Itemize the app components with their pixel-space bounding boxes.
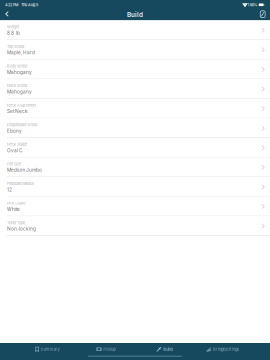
staticText: Mahogany [7, 69, 32, 75]
staticText: Build [127, 11, 143, 19]
staticText: Build [163, 347, 172, 352]
button[interactable]: Neck Attachment [0, 99, 270, 118]
staticText: Neck Attachment [7, 103, 36, 108]
button[interactable]: Neck Shape [0, 138, 270, 157]
staticText: Bridge/Strings [213, 347, 239, 352]
staticText: Pick Guard [7, 201, 25, 205]
staticText: Tuner Type [7, 220, 25, 225]
button[interactable]: Fingerboard Wood [0, 118, 270, 137]
button[interactable]: Fretboard Radius [0, 177, 270, 196]
staticText: Oval C [7, 148, 22, 153]
staticText: Maple, Hard [7, 50, 35, 55]
staticText: Fret Size [7, 162, 21, 166]
staticText: Fretboard Radius [7, 181, 34, 186]
staticText: Body Wood [7, 64, 27, 68]
staticText: 12 [7, 187, 12, 192]
button[interactable]: Compose [255, 10, 268, 19]
button[interactable]: Bridge/Strings [193, 344, 252, 355]
staticText: Top Wood [7, 44, 24, 49]
staticText: Set Neck [7, 108, 28, 114]
button[interactable]: Pickup [77, 344, 135, 355]
button[interactable]: Fret Size [0, 158, 270, 177]
staticText: White [7, 206, 20, 212]
button[interactable]: Body Wood [0, 60, 270, 79]
staticText: Thu Aug 5 [18, 2, 38, 7]
button[interactable]: Neck Wood [0, 79, 270, 98]
staticText: 8.8 lb [7, 30, 20, 36]
staticText: Ebony [7, 128, 22, 134]
staticText: 100% [247, 2, 259, 7]
staticText: Summary [41, 347, 60, 352]
staticText: Pickup [103, 347, 115, 352]
staticText: Fingerboard Wood [7, 122, 37, 127]
button[interactable]: Top Wood [0, 40, 270, 59]
button[interactable]: Weight [0, 20, 270, 39]
staticText: Non-locking [7, 226, 36, 232]
button[interactable]: Back [2, 11, 15, 19]
staticText: Mahogany [7, 89, 32, 95]
staticText: Medium Jumbo [7, 167, 42, 173]
button[interactable]: Summary [18, 344, 77, 355]
staticText: Neck Wood [7, 83, 27, 88]
button[interactable]: Tuner Type [0, 216, 270, 235]
staticText: 4:22 PM [5, 2, 18, 7]
button[interactable]: Pick Guard [0, 197, 270, 216]
button[interactable]: Build [135, 344, 193, 355]
staticText: Neck Shape [7, 142, 27, 147]
staticText: Weight [7, 25, 19, 29]
